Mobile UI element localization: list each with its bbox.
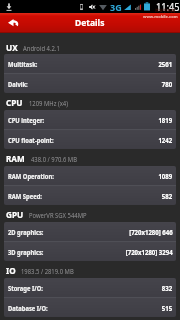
button[interactable]: RAM Operation:: [4, 166, 176, 186]
button[interactable]: 3D graphics:: [4, 242, 176, 261]
staticText: [720x1280] 646: [129, 228, 173, 238]
staticText: Storage I/O:: [8, 284, 44, 294]
staticText: Android 4.2.1: [23, 44, 60, 54]
staticText: CPU integer:: [8, 116, 44, 126]
staticText: RAM Operation:: [8, 172, 54, 182]
staticText: 1819: [158, 116, 173, 126]
staticText: 11:45: [156, 0, 180, 13]
staticText: CPU float-point:: [8, 136, 54, 146]
staticText: 2D graphics:: [8, 228, 44, 238]
button[interactable]: Back: [0, 13, 24, 33]
staticText: Database I/O:: [8, 304, 48, 314]
staticText: 582: [162, 192, 173, 202]
staticText: RAM: [6, 152, 25, 165]
staticText: CPU: [6, 96, 23, 109]
button[interactable]: Storage I/O:: [4, 278, 176, 298]
staticText: RAM Speed:: [8, 192, 42, 202]
staticText: [720x1280] 3294: [126, 248, 173, 258]
staticText: www.mobile.com: [143, 14, 178, 19]
staticText: 832: [162, 284, 173, 294]
staticText: IO: [6, 264, 16, 277]
staticText: 515: [162, 304, 173, 314]
staticText: 780: [162, 80, 173, 90]
button[interactable]: Database I/O:: [4, 298, 176, 317]
staticText: GPU: [6, 208, 23, 221]
staticText: 1089: [158, 172, 173, 182]
staticText: 2561: [158, 60, 173, 70]
staticText: PowerVR SGX 544MP: [29, 211, 87, 221]
button[interactable]: RAM Speed:: [4, 186, 176, 205]
button[interactable]: Multitask:: [4, 54, 176, 74]
staticText: 1209 MHz (x4): [29, 99, 68, 109]
button[interactable]: CPU integer:: [4, 110, 176, 130]
staticText: 438.0 / 970.6 MB: [31, 155, 77, 165]
button[interactable]: CPU float-point:: [4, 130, 176, 149]
staticText: 1242: [158, 136, 173, 146]
button[interactable]: 2D graphics:: [4, 222, 176, 242]
staticText: 1983.5 / 2819.0 MB: [21, 267, 74, 277]
staticText: Multitask:: [8, 60, 38, 70]
staticText: Details: [75, 17, 105, 29]
staticText: 西安手机网: [155, 8, 175, 13]
staticText: 3D graphics:: [8, 248, 44, 258]
staticText: Dalvik:: [8, 80, 28, 90]
staticText: 3G: [110, 1, 122, 13]
staticText: UX: [6, 41, 18, 54]
button[interactable]: Dalvik:: [4, 74, 176, 93]
